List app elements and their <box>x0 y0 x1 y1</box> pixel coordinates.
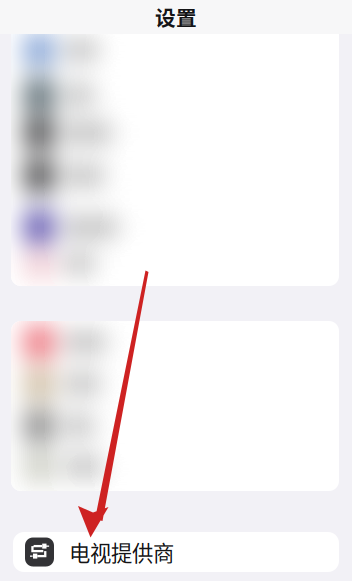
button[interactable]: 电视提供商 <box>13 532 339 572</box>
staticText: 设置 <box>155 2 197 32</box>
staticText: 电视提供商 <box>69 537 174 567</box>
